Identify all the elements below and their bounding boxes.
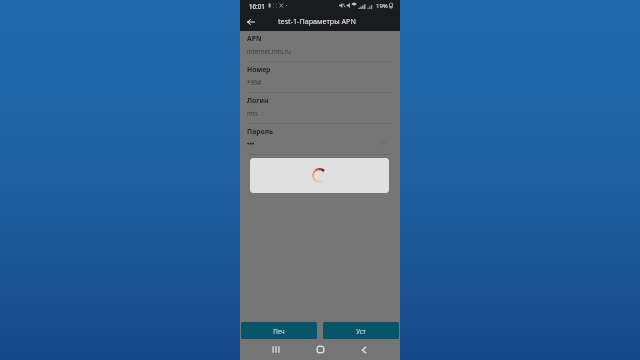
staticText: Номер	[247, 65, 271, 74]
staticText: Печ	[273, 327, 285, 335]
button[interactable]: Логин	[247, 93, 393, 124]
button[interactable]: Уст	[323, 322, 399, 339]
staticText: Уст	[356, 327, 366, 335]
button[interactable]: Пароль	[247, 124, 393, 155]
button[interactable]: Back	[342, 339, 386, 360]
staticText: test-1-Параметры APN	[278, 16, 356, 26]
button[interactable]: APN	[247, 31, 393, 62]
staticText: mts	[247, 109, 258, 117]
staticText: Пароль	[247, 127, 274, 136]
staticText: 19%	[376, 2, 388, 10]
staticText: internet.mts.ru	[247, 47, 291, 55]
staticText: 16:01	[249, 2, 265, 10]
button[interactable]: Recent apps	[254, 339, 298, 360]
staticText: *99#	[247, 78, 262, 86]
button[interactable]: Home	[298, 339, 342, 360]
staticText: APN	[247, 34, 262, 43]
staticText: Логин	[247, 96, 269, 105]
button[interactable]: Печ	[241, 322, 317, 339]
button[interactable]: Номер	[247, 62, 393, 93]
button[interactable]: Back	[243, 14, 258, 29]
